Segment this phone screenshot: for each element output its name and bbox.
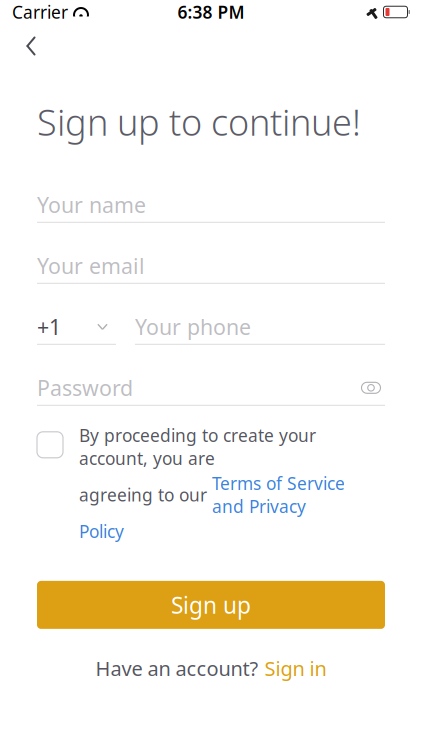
staticText: Password [37, 374, 133, 402]
button[interactable]: Terms of Service and Privacy [212, 472, 345, 518]
button[interactable]: Sign up [37, 581, 385, 629]
staticText: +1 [37, 313, 61, 341]
staticText: Terms of Service and Privacy [212, 472, 345, 518]
staticText: Sign in [264, 655, 326, 681]
staticText: Policy [79, 520, 124, 543]
button[interactable]: Sign in [264, 655, 326, 681]
staticText: Your phone [135, 313, 251, 341]
button[interactable]: Show password [357, 374, 385, 402]
staticText: 6:38 PM [177, 0, 244, 23]
staticText: agreeing to our [79, 483, 212, 506]
staticText: Sign up to continue! [37, 98, 361, 146]
staticText: Carrier [12, 0, 68, 23]
staticText: Have an account? [95, 655, 258, 681]
button[interactable]: +1 [37, 310, 116, 345]
staticText: Sign up [171, 590, 251, 620]
staticText: Your email [37, 252, 145, 280]
button[interactable]: Policy [79, 520, 124, 543]
staticText: Your name [37, 191, 146, 219]
button[interactable]: Back [9, 24, 53, 68]
staticText: By proceeding to create your account, yo… [79, 424, 316, 470]
button[interactable]: Accept terms [37, 432, 63, 458]
